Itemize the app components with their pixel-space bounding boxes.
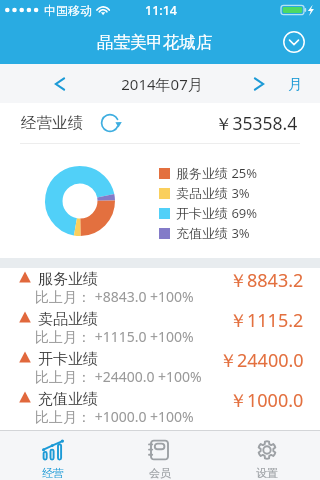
button[interactable]: Next month <box>241 64 277 103</box>
staticText: ￥24400.0 <box>219 348 304 373</box>
button[interactable]: 经营 <box>0 431 106 480</box>
staticText: 充值业绩 3% <box>176 224 250 242</box>
staticText: 卖品业绩 3% <box>176 184 250 202</box>
staticText: ￥8843.2 <box>229 268 304 293</box>
staticText: 晶莹美甲花城店 <box>97 32 213 53</box>
staticText: 服务业绩 <box>38 270 98 289</box>
button[interactable]: 卖品业绩 <box>0 308 320 348</box>
staticText: ￥35358.4 <box>215 111 298 135</box>
button[interactable]: 会员 <box>106 431 213 480</box>
staticText: ￥1115.2 <box>229 308 304 333</box>
staticText: 比上月： +8843.0 +100% <box>35 287 194 306</box>
staticText: 卖品业绩 <box>38 310 98 329</box>
staticText: 比上月： +1115.0 +100% <box>35 327 194 346</box>
staticText: 会员 <box>149 466 171 480</box>
staticText: 充值业绩 <box>38 390 98 409</box>
staticText: 月 <box>288 75 303 93</box>
staticText: ￥1000.0 <box>229 388 304 413</box>
button[interactable]: Previous month <box>42 64 78 103</box>
button[interactable]: 设置 <box>213 431 320 480</box>
staticText: 服务业绩 25% <box>176 164 258 182</box>
staticText: 2014年07月 <box>121 74 203 94</box>
staticText: 开卡业绩 69% <box>176 204 258 222</box>
button[interactable]: 开卡业绩 <box>0 348 320 388</box>
button[interactable]: Expand <box>278 26 310 58</box>
staticText: 经营 <box>42 466 64 480</box>
staticText: 11:14 <box>145 2 178 19</box>
button[interactable]: 月 <box>278 64 320 103</box>
staticText: 开卡业绩 <box>38 350 98 369</box>
button[interactable]: Refresh <box>96 109 124 137</box>
staticText: 中国移动 <box>44 3 92 18</box>
staticText: 比上月： +24400.0 +100% <box>35 367 202 386</box>
staticText: 设置 <box>256 466 278 480</box>
staticText: 比上月： +1000.0 +100% <box>35 407 194 426</box>
button[interactable]: 充值业绩 <box>0 388 320 428</box>
button[interactable]: 服务业绩 <box>0 268 320 308</box>
staticText: 经营业绩 <box>21 113 83 133</box>
